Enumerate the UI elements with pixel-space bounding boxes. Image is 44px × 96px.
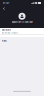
staticText: 9:41 [3,1,9,5]
staticText: Plans [1,39,6,42]
staticText: Subscribe to continue [11,21,32,23]
button[interactable]: Monthly [0,28,44,34]
button[interactable]: Back [1,6,6,11]
staticText: Monthly [1,28,10,31]
staticText: $9.99 per month [1,32,17,34]
